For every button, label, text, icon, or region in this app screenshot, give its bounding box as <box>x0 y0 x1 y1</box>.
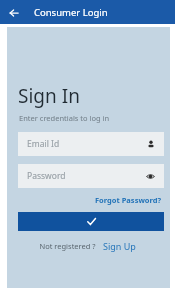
staticText: Email Id <box>27 138 147 150</box>
button[interactable]: Forgot Password? <box>93 194 164 206</box>
staticText: Sign In <box>18 83 80 109</box>
staticText: Consumer Login <box>34 6 108 19</box>
button[interactable]: Sign Up <box>101 239 138 253</box>
button[interactable]: Back <box>5 4 22 21</box>
staticText: Enter credentials to log in <box>19 113 110 123</box>
button[interactable]: Email Id <box>18 132 164 156</box>
button[interactable]: Sign in <box>18 212 164 231</box>
button[interactable]: Password <box>18 164 164 188</box>
staticText: Password <box>27 170 146 182</box>
staticText: Sign Up <box>103 240 136 252</box>
staticText: Not registered ? <box>39 241 96 251</box>
staticText: Forgot Password? <box>95 195 162 205</box>
button[interactable]: Show password <box>146 172 155 181</box>
